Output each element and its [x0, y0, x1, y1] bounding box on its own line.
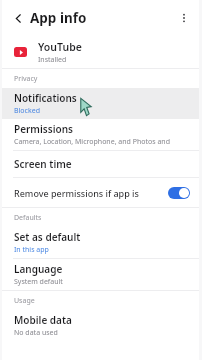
staticText: Privacy	[14, 74, 38, 84]
staticText: In this app	[14, 245, 49, 255]
staticText: Language	[14, 262, 63, 276]
button[interactable]: Back	[7, 7, 29, 29]
staticText: Set as default	[14, 230, 81, 244]
staticText: Camera, Location, Microphone, and Photos…	[14, 137, 191, 147]
button[interactable]: Permissions	[2, 119, 199, 150]
button[interactable]: Remove permissions if app is unused	[2, 178, 199, 207]
staticText: System default	[14, 277, 63, 287]
button[interactable]: Mobile data	[2, 310, 199, 341]
staticText: Notifications	[14, 91, 77, 105]
button[interactable]: Screen time	[2, 151, 199, 177]
staticText: Installed	[38, 55, 67, 65]
staticText: Permissions	[14, 122, 73, 136]
button[interactable]: Notifications	[2, 88, 199, 119]
staticText: App info	[30, 9, 87, 27]
staticText: Remove permissions if app is unused	[14, 187, 164, 199]
staticText: Defaults	[14, 213, 42, 223]
staticText: Usage	[14, 296, 35, 306]
staticText: No data used	[14, 328, 58, 338]
button[interactable]: Language	[2, 259, 199, 290]
button[interactable]: YouTube	[2, 36, 199, 68]
staticText: Screen time	[14, 157, 72, 171]
staticText: Mobile data	[14, 313, 72, 327]
button[interactable]: More options	[173, 7, 195, 29]
staticText: YouTube	[38, 40, 82, 54]
staticText: Blocked	[14, 106, 40, 116]
button[interactable]: Set as default	[2, 227, 199, 258]
